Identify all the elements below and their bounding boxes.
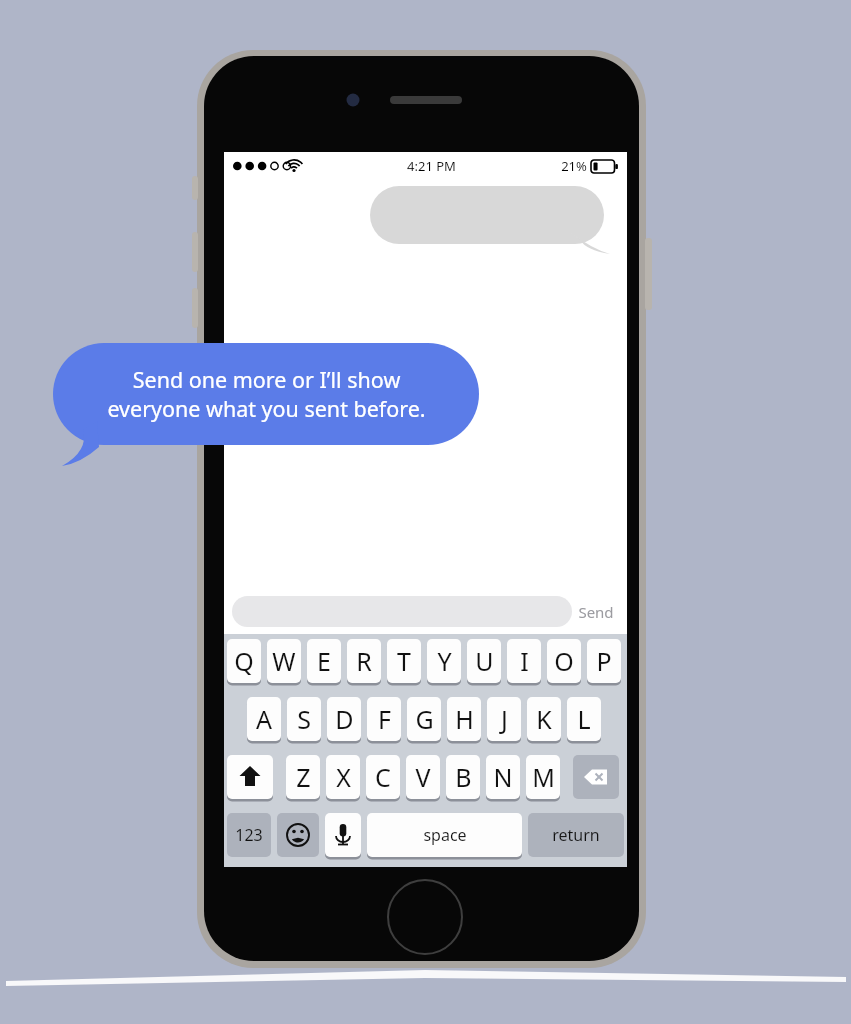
staticText: C (375, 760, 391, 794)
button[interactable]: L (567, 697, 601, 741)
button[interactable]: U (467, 639, 501, 683)
button[interactable]: Dictation (325, 813, 361, 857)
button[interactable]: space (367, 813, 522, 857)
button[interactable]: G (407, 697, 441, 741)
staticText: W (272, 644, 296, 678)
staticText: 21% (561, 157, 587, 175)
button[interactable]: W (267, 639, 301, 683)
staticText: P (596, 644, 612, 678)
staticText: A (256, 702, 272, 736)
button[interactable]: X (326, 755, 360, 799)
staticText: E (317, 644, 331, 678)
staticText: O (554, 644, 574, 678)
staticText: M (532, 760, 555, 794)
staticText: U (475, 644, 494, 678)
button[interactable]: M (526, 755, 560, 799)
staticText: L (577, 702, 591, 736)
button[interactable]: Send one more or I’ll show everyone what… (53, 343, 479, 467)
button[interactable]: V (406, 755, 440, 799)
staticText: F (378, 702, 391, 736)
button[interactable]: P (587, 639, 621, 683)
button[interactable]: T (387, 639, 421, 683)
staticText: 123 (235, 824, 263, 846)
button[interactable] (370, 186, 610, 252)
button[interactable]: Delete (573, 755, 619, 799)
button[interactable]: Emoji (277, 813, 319, 857)
button[interactable]: Send (572, 596, 619, 627)
staticText: Send one more or I’ll show everyone what… (107, 365, 426, 423)
button[interactable]: Z (286, 755, 320, 799)
button[interactable]: 123 (227, 813, 271, 857)
staticText: S (297, 702, 311, 736)
button[interactable]: O (547, 639, 581, 683)
button[interactable]: S (287, 697, 321, 741)
button[interactable]: Shift (227, 755, 273, 799)
staticText: return (552, 824, 600, 846)
staticText: T (397, 644, 411, 678)
staticText: space (423, 824, 467, 846)
staticText: X (336, 760, 351, 794)
button[interactable]: C (366, 755, 400, 799)
staticText: Y (437, 644, 452, 678)
button[interactable]: K (527, 697, 561, 741)
button[interactable]: Y (427, 639, 461, 683)
staticText: I (520, 644, 529, 678)
staticText: Z (296, 760, 311, 794)
button[interactable]: A (247, 697, 281, 741)
staticText: Q (234, 644, 254, 678)
staticText: N (493, 760, 513, 794)
staticText: J (501, 702, 508, 736)
staticText: D (335, 702, 354, 736)
button[interactable]: R (347, 639, 381, 683)
button[interactable]: I (507, 639, 541, 683)
button[interactable]: H (447, 697, 481, 741)
button[interactable]: E (307, 639, 341, 683)
button[interactable] (232, 596, 572, 627)
button[interactable]: return (528, 813, 624, 857)
staticText: Send (578, 602, 614, 622)
button[interactable]: D (327, 697, 361, 741)
button[interactable]: Q (227, 639, 261, 683)
staticText: R (356, 644, 372, 678)
button[interactable]: F (367, 697, 401, 741)
staticText: G (415, 702, 434, 736)
button[interactable]: J (487, 697, 521, 741)
staticText: V (415, 760, 431, 794)
button[interactable]: B (446, 755, 480, 799)
staticText: B (455, 760, 472, 794)
button[interactable]: N (486, 755, 520, 799)
staticText: H (455, 702, 474, 736)
staticText: 4:21 PM (407, 157, 456, 175)
staticText: K (536, 702, 552, 736)
